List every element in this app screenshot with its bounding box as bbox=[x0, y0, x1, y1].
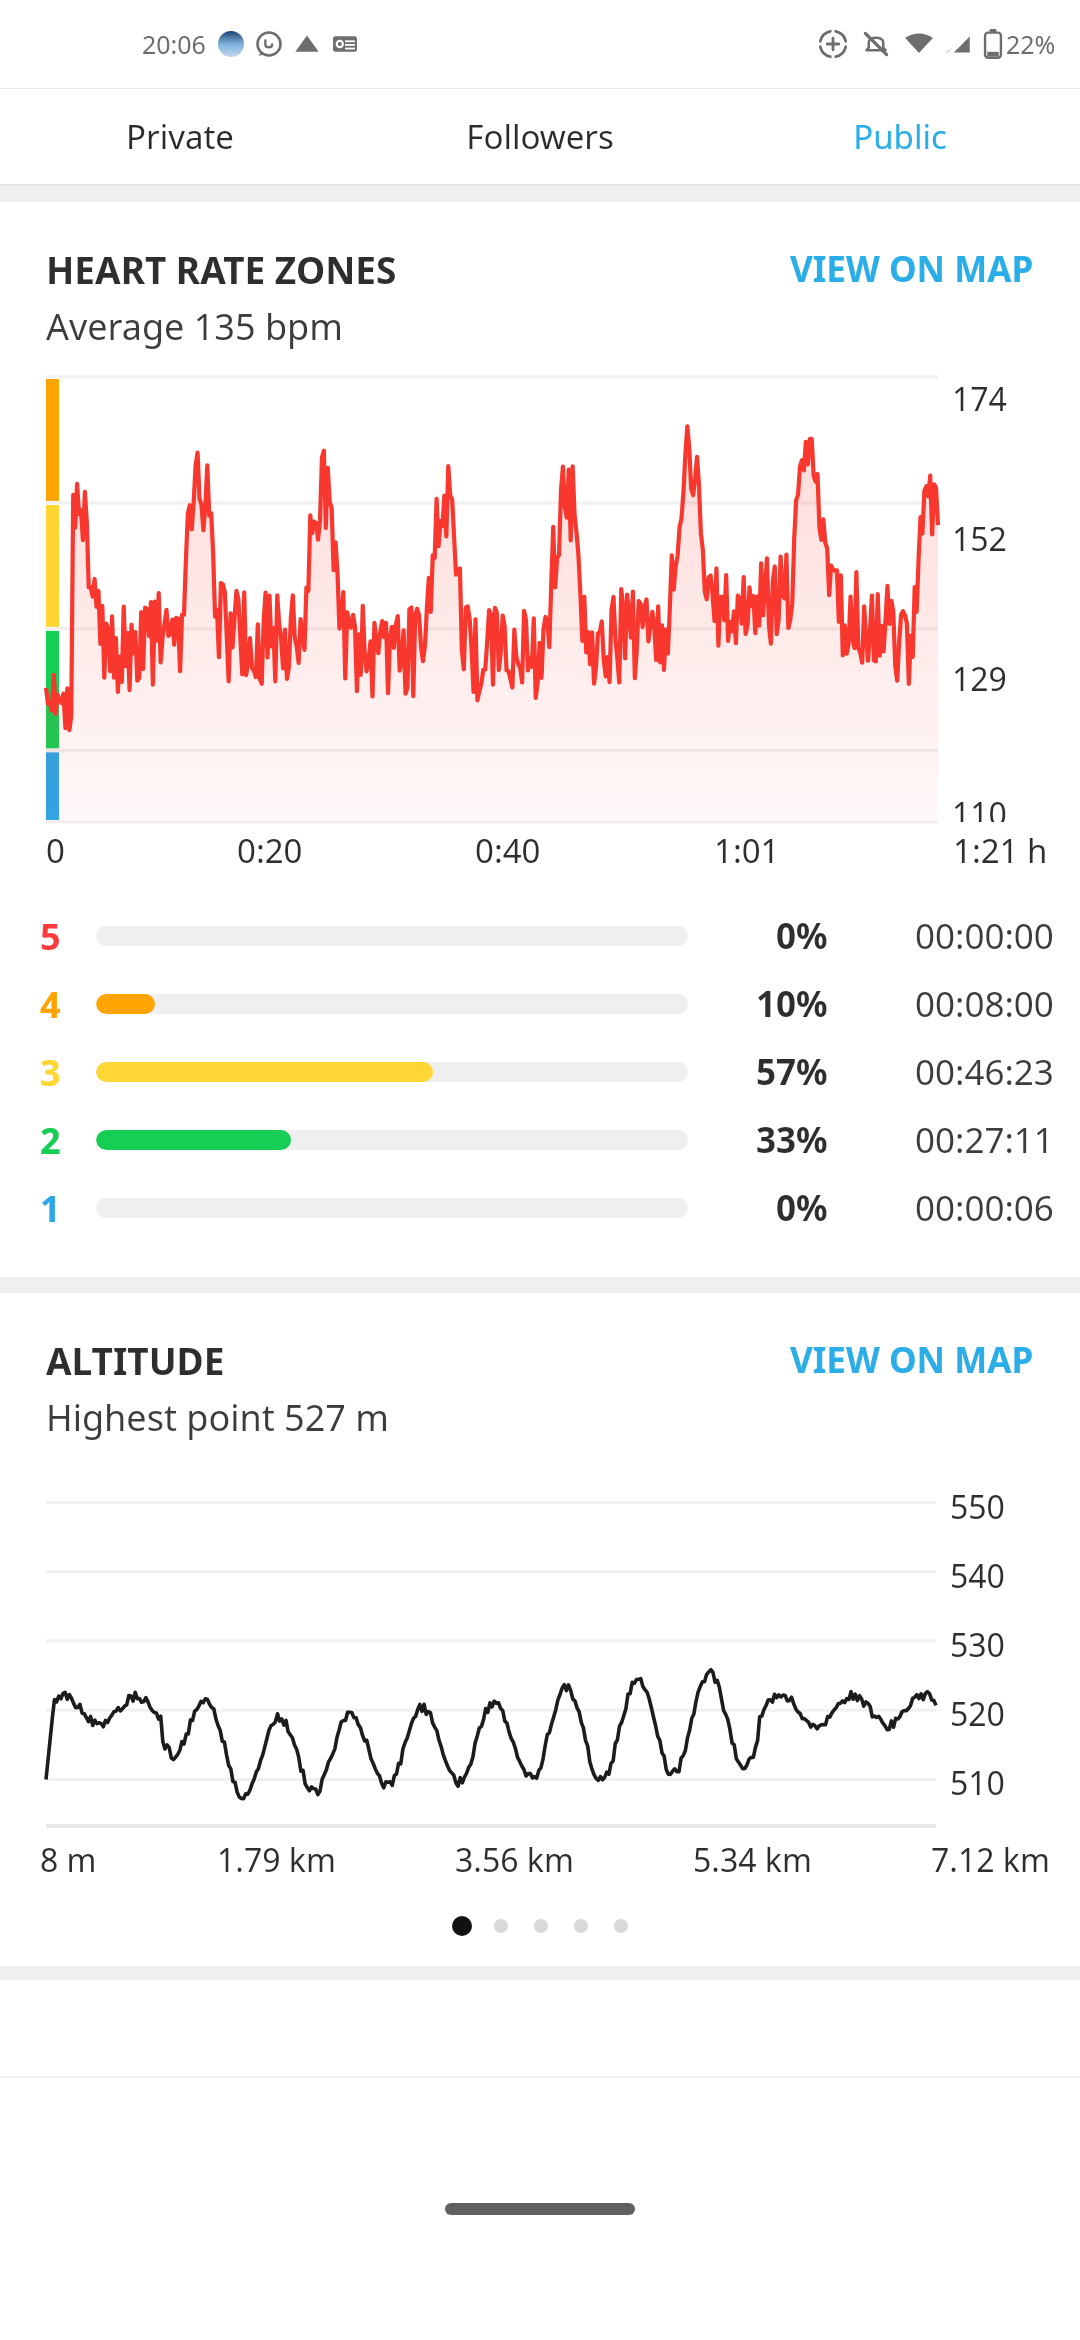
button[interactable]: 3 bbox=[0, 1039, 1080, 1105]
button[interactable]: Private bbox=[0, 89, 360, 184]
staticText: 510 bbox=[950, 1761, 1005, 1805]
button[interactable]: VIEW ON MAP bbox=[790, 245, 1034, 293]
button[interactable]: 2 bbox=[0, 1107, 1080, 1173]
staticText: 540 bbox=[950, 1554, 1005, 1598]
staticText: 7.12 km bbox=[931, 1838, 1050, 1882]
staticText: ALTITUDE bbox=[46, 1335, 225, 1385]
staticText: 129 bbox=[952, 657, 1007, 701]
staticText: 530 bbox=[950, 1623, 1005, 1667]
staticText: 1.79 km bbox=[217, 1838, 336, 1882]
staticText: 8 m bbox=[40, 1838, 97, 1882]
button[interactable]: 1 bbox=[0, 1175, 1080, 1241]
staticText: 1:21 h bbox=[953, 828, 1048, 873]
staticText: Public bbox=[853, 114, 947, 159]
staticText: 1 bbox=[40, 1184, 61, 1233]
button[interactable]: Public bbox=[720, 89, 1080, 184]
staticText: 0:20 bbox=[237, 828, 303, 873]
button[interactable]: VIEW ON MAP bbox=[790, 1336, 1034, 1384]
staticText: Private bbox=[126, 114, 234, 159]
staticText: 0% bbox=[776, 912, 828, 960]
staticText: Highest point 527 m bbox=[46, 1393, 389, 1442]
staticText: 00:27:11 bbox=[915, 1116, 1054, 1164]
staticText: 00:08:00 bbox=[915, 980, 1054, 1028]
button[interactable]: Page 3 bbox=[534, 1919, 548, 1933]
staticText: 550 bbox=[950, 1485, 1005, 1529]
staticText: 5 bbox=[40, 912, 61, 961]
staticText: 2 bbox=[40, 1116, 61, 1165]
staticText: 00:00:06 bbox=[915, 1184, 1054, 1232]
staticText: 00:46:23 bbox=[915, 1048, 1054, 1096]
staticText: 10% bbox=[756, 980, 828, 1028]
staticText: 0:40 bbox=[475, 828, 541, 873]
staticText: 3 bbox=[40, 1048, 61, 1097]
button[interactable]: Followers bbox=[360, 89, 720, 184]
button[interactable]: 5 bbox=[0, 903, 1080, 969]
button[interactable]: Page 2 bbox=[494, 1919, 508, 1933]
staticText: 174 bbox=[952, 377, 1007, 421]
button[interactable]: 4 bbox=[0, 971, 1080, 1037]
staticText: 57% bbox=[756, 1048, 828, 1096]
staticText: Followers bbox=[466, 114, 614, 159]
button[interactable]: Page 5 bbox=[614, 1919, 628, 1933]
staticText: 4 bbox=[40, 980, 61, 1029]
staticText: 110 bbox=[952, 792, 1007, 822]
staticText: 1:01 bbox=[714, 828, 780, 873]
staticText: 152 bbox=[952, 517, 1007, 561]
staticText: HEART RATE ZONES bbox=[46, 244, 397, 294]
button[interactable]: Page 1 bbox=[452, 1916, 472, 1936]
staticText: VIEW ON MAP bbox=[790, 245, 1034, 293]
staticText: 5.34 km bbox=[693, 1838, 812, 1882]
staticText: 0 bbox=[46, 828, 65, 873]
staticText: 22% bbox=[1006, 27, 1056, 61]
staticText: VIEW ON MAP bbox=[790, 1336, 1034, 1384]
staticText: 3.56 km bbox=[455, 1838, 574, 1882]
staticText: 20:06 bbox=[142, 27, 206, 61]
staticText: 33% bbox=[756, 1116, 828, 1164]
staticText: 00:00:00 bbox=[915, 912, 1054, 960]
staticText: 0% bbox=[776, 1184, 828, 1232]
staticText: 520 bbox=[950, 1692, 1005, 1736]
staticText: Average 135 bpm bbox=[46, 302, 343, 351]
button[interactable]: Page 4 bbox=[574, 1919, 588, 1933]
